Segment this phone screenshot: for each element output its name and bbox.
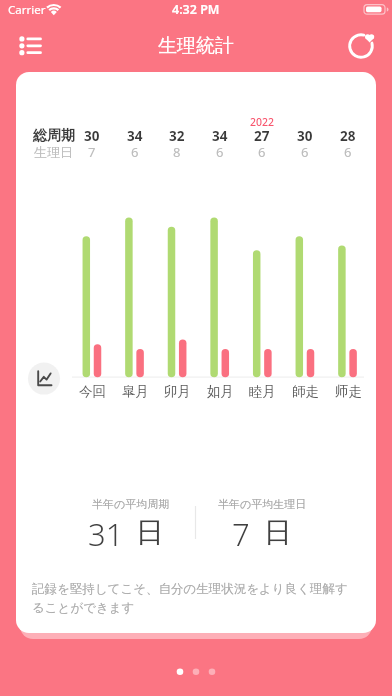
staticText: 6 [344, 143, 352, 161]
staticText: 卯月 [164, 383, 191, 400]
button[interactable]: 7 [196, 513, 328, 551]
staticText: 31 [88, 513, 124, 551]
staticText: 28 [340, 127, 356, 145]
staticText: Carrier [8, 2, 46, 18]
staticText: 30 [297, 127, 313, 145]
staticText: 32 [169, 127, 185, 145]
button[interactable] [344, 29, 378, 63]
staticText: 师走 [335, 383, 362, 400]
staticText: 27 [254, 127, 270, 145]
staticText: 日 [136, 515, 164, 550]
staticText: 半年の平均生理日 [218, 497, 307, 511]
staticText: 7 [88, 143, 96, 161]
button[interactable] [12, 30, 50, 62]
staticText: 如月 [207, 383, 234, 400]
staticText: 6 [216, 143, 224, 161]
staticText: 7 [232, 513, 250, 551]
staticText: 総周期 [33, 127, 75, 145]
staticText: 日 [264, 515, 292, 550]
staticText: 2022 [250, 115, 275, 129]
staticText: 4:32 PM [172, 1, 220, 18]
staticText: 34 [212, 127, 228, 145]
staticText: 6 [301, 143, 309, 161]
staticText: 生理日 [34, 144, 73, 160]
staticText: 今回 [79, 383, 106, 400]
button[interactable]: 31 [60, 513, 192, 551]
staticText: 師走 [292, 383, 319, 400]
staticText: 生理統計 [158, 34, 234, 58]
staticText: 6 [131, 143, 139, 161]
staticText: 半年の平均周期 [92, 497, 170, 511]
staticText: 睦月 [249, 383, 276, 400]
staticText: 8 [173, 143, 181, 161]
staticText: 記録を堅持してこそ、自分の生理状況をより良く理解す ることができます [32, 581, 348, 616]
staticText: 皐月 [122, 383, 149, 400]
staticText: 30 [84, 127, 100, 145]
button[interactable] [28, 362, 60, 395]
staticText: 34 [127, 127, 143, 145]
staticText: 6 [258, 143, 266, 161]
